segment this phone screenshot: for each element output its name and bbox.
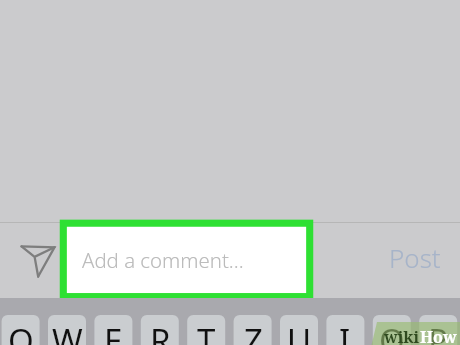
button[interactable] <box>326 315 364 345</box>
staticText: O <box>379 318 405 345</box>
button[interactable]: Share <box>8 232 68 290</box>
staticText: Post <box>389 240 441 275</box>
staticText: wiki <box>384 326 420 345</box>
button[interactable] <box>94 315 132 345</box>
button[interactable]: Add a comment... <box>63 223 311 297</box>
staticText: R <box>150 318 171 345</box>
staticText: P <box>428 318 448 345</box>
staticText: I <box>339 318 351 345</box>
button[interactable] <box>141 315 179 345</box>
button[interactable] <box>373 315 411 345</box>
staticText: U <box>287 318 312 345</box>
button[interactable]: Post <box>370 227 460 287</box>
staticText: T <box>197 318 216 345</box>
staticText: Z <box>244 318 263 345</box>
button[interactable] <box>280 315 318 345</box>
staticText: How <box>420 326 457 345</box>
staticText: E <box>104 318 123 345</box>
button[interactable] <box>419 315 457 345</box>
button[interactable] <box>2 315 40 345</box>
staticText: Add a comment... <box>82 246 244 274</box>
staticText: Q <box>8 318 34 345</box>
button[interactable] <box>48 315 86 345</box>
staticText: W <box>52 318 83 345</box>
button[interactable] <box>187 315 225 345</box>
button[interactable] <box>234 315 272 345</box>
